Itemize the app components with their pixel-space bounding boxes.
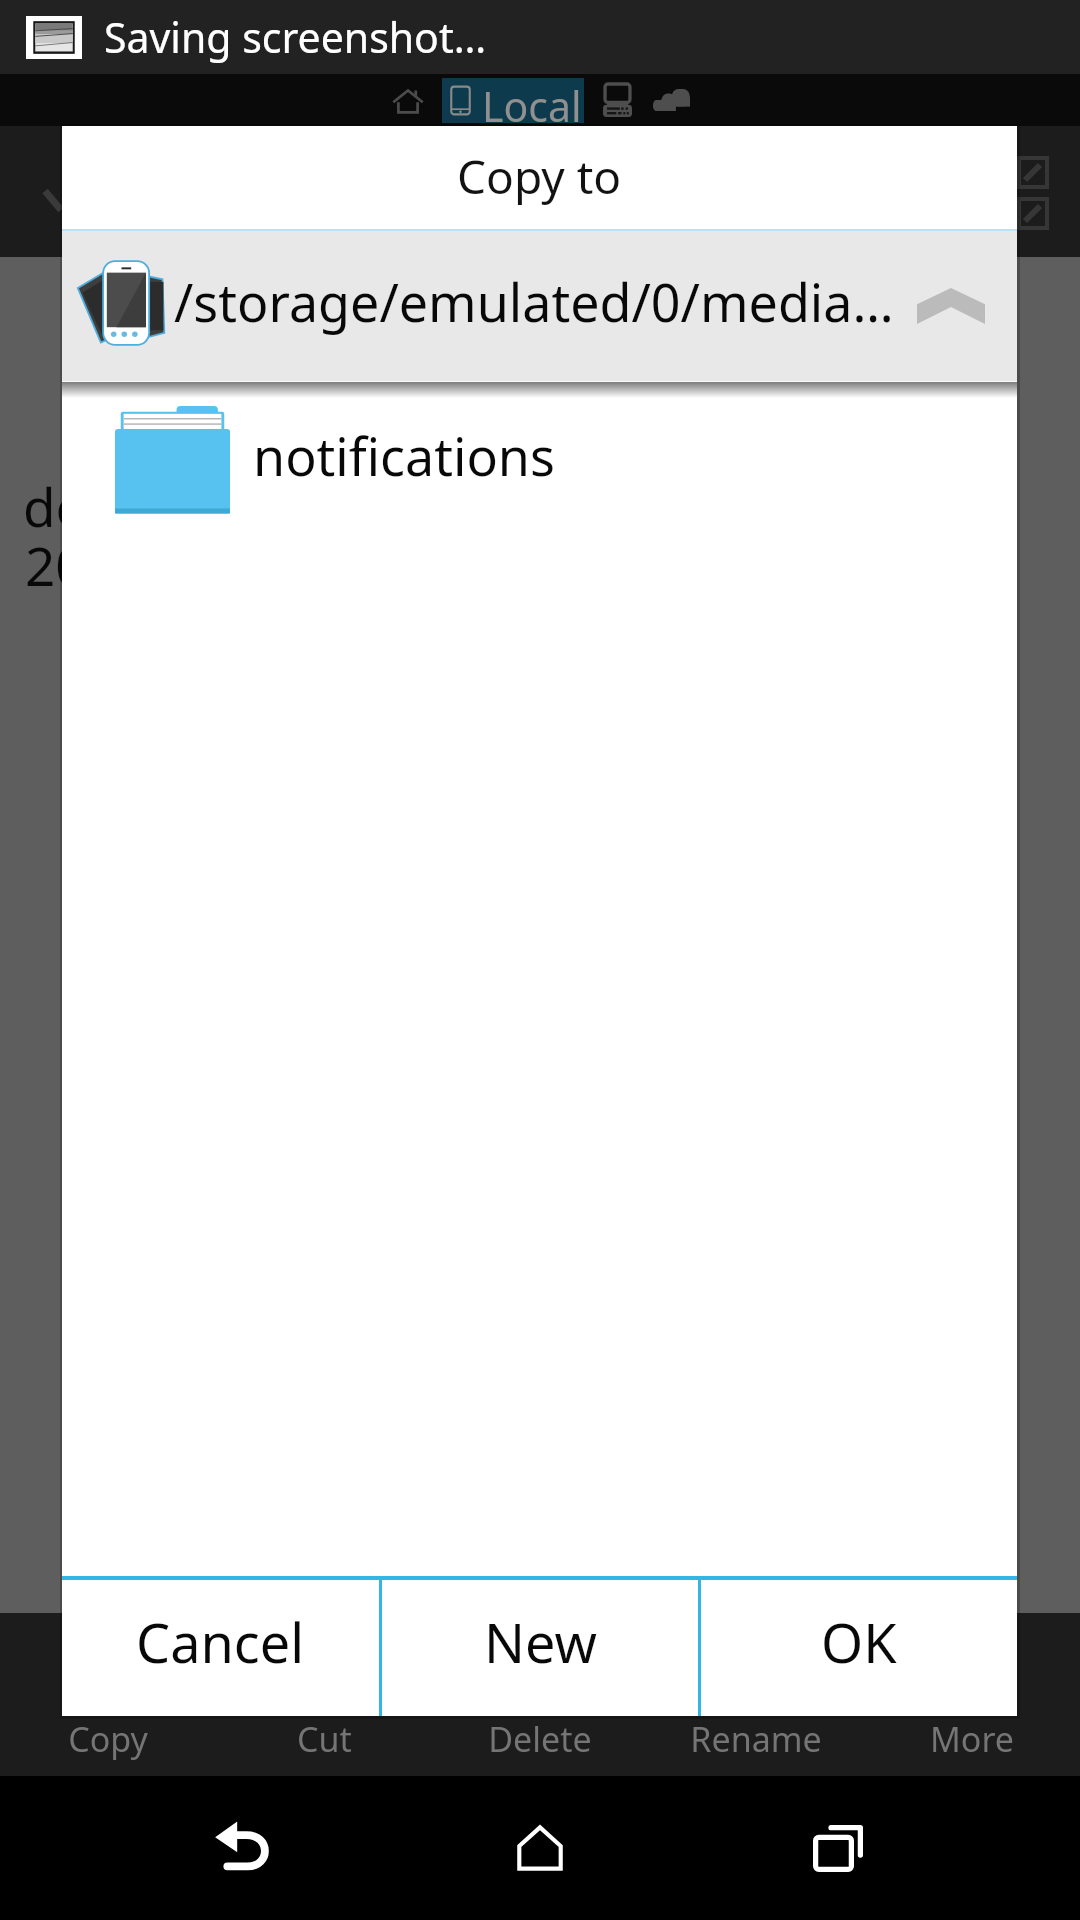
button[interactable]: Cut [216,1716,432,1772]
staticText: Cut [297,1716,352,1762]
staticText: Copy to [457,145,622,208]
button[interactable]: Computer [592,74,642,126]
button[interactable]: /storage/emulated/0/media… [62,231,1017,381]
button[interactable]: Copy [0,1716,216,1772]
button[interactable]: Recent apps [783,1793,893,1903]
staticText: Cancel [136,1605,305,1679]
staticText: notifications [253,420,555,491]
button[interactable]: Local [450,78,582,123]
button[interactable]: Cancel [62,1580,379,1716]
staticText: Saving screenshot… [104,9,487,65]
staticText: 20 [25,529,86,601]
staticText: New [484,1605,597,1679]
staticText: OK [821,1605,897,1679]
button[interactable]: Back [188,1793,298,1903]
button[interactable]: Rename [648,1716,864,1772]
staticText: Delete [488,1716,592,1762]
staticText: do [23,470,88,542]
button[interactable]: More [864,1716,1080,1772]
button[interactable]: notifications [62,398,1017,528]
button[interactable]: OK [701,1580,1017,1716]
button[interactable]: Cloud [645,74,697,126]
staticText: Copy [68,1716,148,1762]
button[interactable]: New [382,1580,698,1716]
button[interactable]: Delete [432,1716,648,1772]
staticText: /storage/emulated/0/media… [174,266,894,337]
staticText: Local [482,78,582,123]
button[interactable]: Home [382,74,434,126]
staticText: More [930,1716,1014,1762]
staticText: Rename [690,1716,822,1762]
button[interactable]: Home [485,1793,595,1903]
